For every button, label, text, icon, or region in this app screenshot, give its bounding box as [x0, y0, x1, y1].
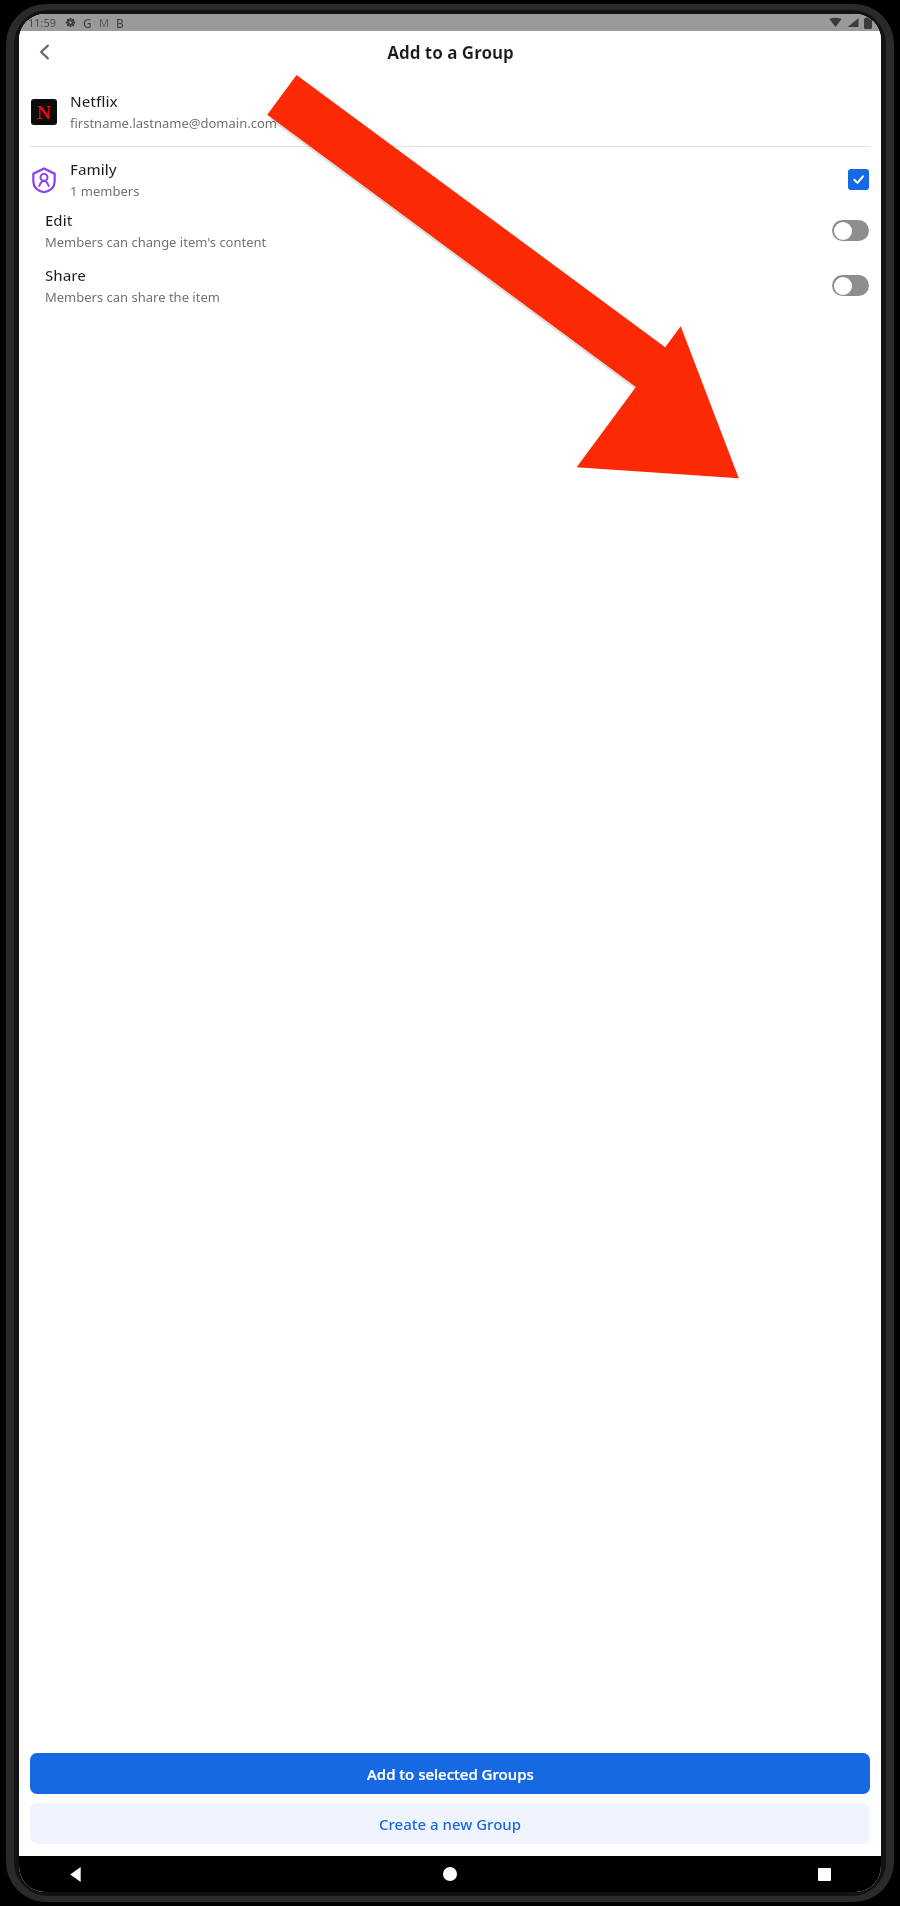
staticText: firstname.lastname@domain.com: [70, 114, 277, 132]
button[interactable]: Share: [19, 265, 881, 306]
staticText: Share: [45, 265, 86, 285]
button[interactable]: Recents: [807, 1857, 841, 1891]
staticText: 11:59: [28, 15, 57, 30]
button[interactable]: Family: [19, 159, 881, 200]
staticText: Add to a Group: [387, 41, 514, 64]
staticText: M: [99, 15, 109, 30]
staticText: Family: [70, 159, 117, 179]
button[interactable]: Edit toggle: [832, 220, 869, 241]
staticText: Members can share the item: [45, 288, 220, 306]
button[interactable]: Edit: [19, 210, 881, 251]
staticText: Create a new Group: [379, 1814, 522, 1834]
staticText: 1 members: [70, 182, 140, 200]
button[interactable]: Back: [25, 32, 65, 72]
button[interactable]: Share toggle: [832, 275, 869, 296]
button[interactable]: Home: [433, 1857, 467, 1891]
button[interactable]: Selected: [848, 169, 869, 190]
staticText: Members can change item's content: [45, 233, 267, 251]
staticText: Add to selected Groups: [367, 1764, 534, 1784]
staticText: Netflix: [70, 91, 118, 111]
button[interactable]: Back: [59, 1857, 93, 1891]
button[interactable]: Create a new Group: [30, 1803, 870, 1844]
button[interactable]: Add to selected Groups: [30, 1753, 870, 1794]
staticText: Edit: [45, 210, 73, 230]
button[interactable]: N: [19, 87, 881, 136]
staticText: B: [116, 15, 124, 31]
staticText: N: [37, 100, 52, 125]
staticText: G: [83, 15, 92, 31]
